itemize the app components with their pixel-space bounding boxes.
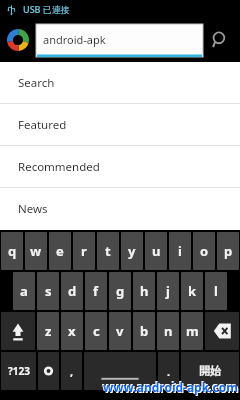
button[interactable]: q: [1, 232, 23, 270]
button[interactable]: n: [157, 312, 179, 350]
button[interactable]: Space: [84, 352, 156, 390]
button[interactable]: Recommended: [0, 146, 240, 188]
staticText: a: [20, 282, 28, 300]
staticText: d: [68, 282, 77, 300]
button[interactable]: Search provider logo: [5, 27, 31, 53]
button[interactable]: h: [133, 272, 155, 310]
staticText: www.android-apk.com: [102, 378, 237, 394]
staticText: b: [140, 322, 149, 340]
staticText: n: [164, 322, 173, 340]
button[interactable]: l: [205, 272, 227, 310]
staticText: p: [224, 242, 233, 260]
staticText: www.android-apk.com: [104, 380, 239, 396]
button[interactable]: Backspace: [205, 312, 239, 350]
staticText: j: [166, 282, 170, 300]
button[interactable]: j: [157, 272, 179, 310]
button[interactable]: y: [121, 232, 143, 270]
button[interactable]: b: [133, 312, 155, 350]
staticText: o: [200, 242, 209, 260]
button[interactable]: d: [61, 272, 83, 310]
staticText: www.android-apk.com: [103, 379, 238, 395]
staticText: z: [45, 322, 52, 340]
button[interactable]: s: [37, 272, 59, 310]
button[interactable]: e: [49, 232, 71, 270]
staticText: ,: [70, 364, 74, 379]
staticText: 開始: [199, 364, 221, 378]
staticText: r: [81, 242, 87, 260]
button[interactable]: z: [37, 312, 59, 350]
staticText: f: [93, 282, 99, 300]
button[interactable]: o: [193, 232, 215, 270]
staticText: h: [140, 282, 149, 300]
staticText: m: [186, 322, 199, 340]
button[interactable]: 開始: [181, 352, 239, 390]
staticText: News: [18, 201, 48, 217]
button[interactable]: r: [73, 232, 95, 270]
staticText: s: [45, 282, 52, 300]
staticText: g: [116, 282, 125, 300]
button[interactable]: c: [85, 312, 107, 350]
staticText: Recommended: [18, 159, 100, 175]
button[interactable]: Featured: [0, 104, 240, 146]
button[interactable]: News: [0, 188, 240, 230]
staticText: w: [30, 242, 42, 260]
staticText: y: [128, 242, 136, 260]
staticText: ?123: [8, 364, 30, 378]
staticText: l: [214, 282, 218, 300]
staticText: Featured: [18, 117, 67, 133]
staticText: k: [188, 282, 197, 300]
button[interactable]: ,: [61, 352, 82, 390]
staticText: e: [56, 242, 64, 260]
button[interactable]: m: [181, 312, 203, 350]
button[interactable]: android-apk: [36, 24, 203, 57]
button[interactable]: Shift: [1, 312, 35, 350]
staticText: c: [93, 322, 100, 340]
button[interactable]: w: [25, 232, 47, 270]
button[interactable]: i: [169, 232, 191, 270]
button[interactable]: f: [85, 272, 107, 310]
staticText: q: [8, 242, 17, 260]
button[interactable]: Search: [0, 62, 240, 104]
button[interactable]: .: [158, 352, 179, 390]
staticText: v: [116, 322, 124, 340]
button[interactable]: v: [109, 312, 131, 350]
staticText: x: [68, 322, 76, 340]
staticText: t: [105, 242, 111, 260]
button[interactable]: a: [13, 272, 35, 310]
button[interactable]: p: [217, 232, 239, 270]
button[interactable]: x: [61, 312, 83, 350]
button[interactable]: t: [97, 232, 119, 270]
staticText: android-apk: [43, 32, 106, 47]
button[interactable]: Search: [205, 25, 235, 55]
staticText: .: [167, 364, 171, 379]
staticText: u: [152, 242, 161, 260]
staticText: USB 已連接: [23, 3, 70, 15]
button[interactable]: k: [181, 272, 203, 310]
button[interactable]: g: [109, 272, 131, 310]
button[interactable]: ?123: [1, 352, 36, 390]
button[interactable]: u: [145, 232, 167, 270]
button[interactable]: Input settings: [38, 352, 59, 390]
staticText: i: [178, 242, 182, 260]
staticText: Search: [18, 75, 55, 91]
